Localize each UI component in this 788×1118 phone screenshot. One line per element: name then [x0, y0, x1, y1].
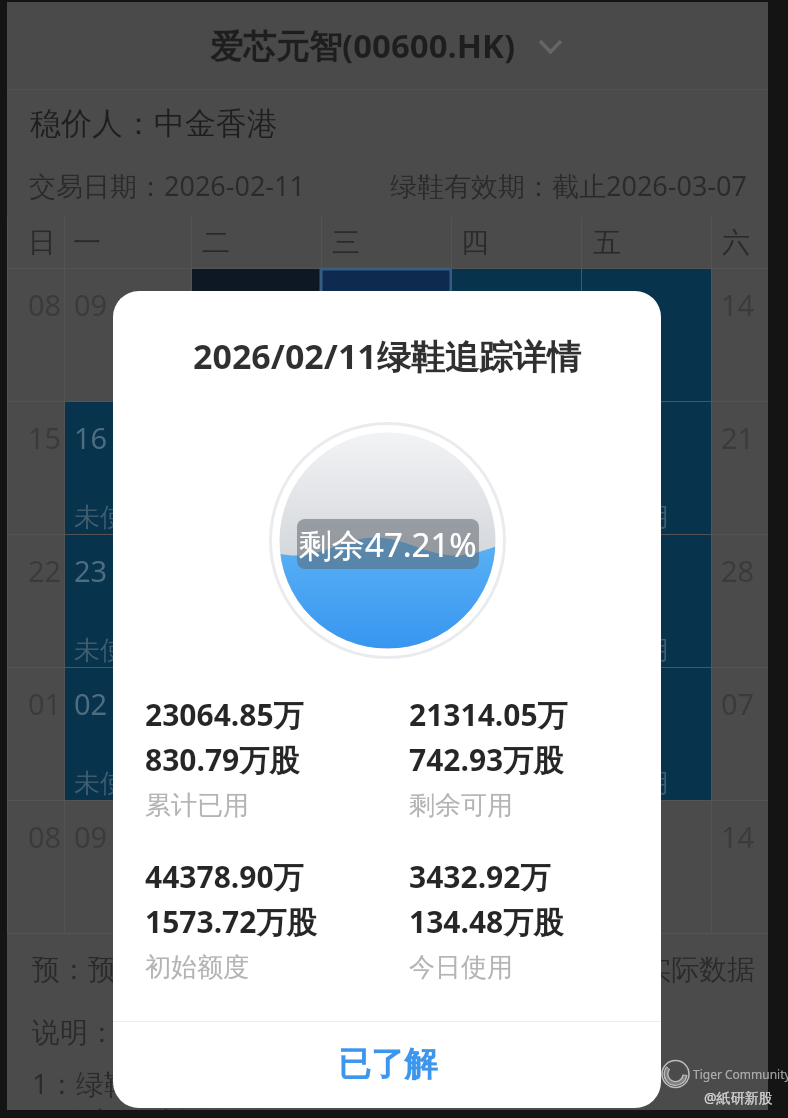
- staticText: 23: [74, 551, 108, 590]
- staticText: 1：绿鞋资金使用数据统计为每个交易日收盘最后: [32, 1064, 637, 1102]
- staticText: 说明：: [32, 1015, 116, 1050]
- staticText: 未使用: [74, 501, 152, 534]
- button[interactable]: 13: [581, 801, 711, 934]
- button[interactable]: 28: [711, 535, 768, 668]
- button[interactable]: 25: [321, 535, 451, 668]
- button[interactable]: 12: [451, 269, 581, 402]
- staticText: 未使用: [201, 501, 279, 534]
- staticText: 剩余可用: [409, 789, 513, 822]
- staticText: 02: [74, 684, 108, 723]
- staticText: 未使用: [591, 501, 669, 534]
- staticText: 五: [593, 225, 621, 260]
- staticText: 14: [721, 285, 755, 324]
- staticText: 22: [28, 551, 62, 590]
- staticText: 19: [461, 418, 495, 457]
- staticText: 六: [722, 225, 750, 260]
- button[interactable]: 27: [581, 535, 711, 668]
- button[interactable]: 26: [451, 535, 581, 668]
- staticText: 26: [461, 551, 495, 590]
- button[interactable]: 已了解: [113, 1022, 661, 1108]
- staticText: 134.48万股: [409, 901, 564, 942]
- staticText: 未使用: [591, 767, 669, 800]
- staticText: 交易日期：2026-02-11: [29, 167, 305, 204]
- staticText: 未使用: [201, 767, 279, 800]
- staticText: 实：实际数据: [587, 952, 755, 987]
- staticText: 13: [591, 285, 625, 324]
- button[interactable]: 23: [64, 535, 191, 668]
- button[interactable]: 10: [191, 801, 321, 934]
- button[interactable]: 09: [64, 801, 191, 934]
- staticText: 日: [28, 225, 56, 260]
- button[interactable]: 03: [191, 668, 321, 801]
- staticText: 剩余47.21%: [299, 522, 477, 567]
- button[interactable]: 08: [7, 801, 64, 934]
- button[interactable]: 05: [451, 668, 581, 801]
- staticText: 09: [74, 285, 108, 324]
- staticText: 05: [461, 684, 495, 723]
- staticText: 18: [331, 418, 365, 457]
- button[interactable]: 24: [191, 535, 321, 668]
- staticText: 累计已用: [145, 789, 249, 822]
- button[interactable]: 11: [321, 801, 451, 934]
- staticText: 未使用: [461, 501, 539, 534]
- staticText: 3432.92万: [409, 856, 551, 897]
- staticText: 三: [332, 225, 360, 260]
- staticText: 21314.05万: [409, 694, 568, 735]
- staticText: 23064.85万: [145, 694, 304, 735]
- staticText: 28: [721, 551, 755, 590]
- button[interactable]: 06: [581, 668, 711, 801]
- staticText: 07: [721, 684, 755, 723]
- staticText: 830.79万股: [145, 739, 300, 780]
- button[interactable]: 13: [581, 269, 711, 402]
- button[interactable]: 04: [321, 668, 451, 801]
- staticText: 未使用: [331, 501, 409, 534]
- button[interactable]: 10: [191, 269, 321, 402]
- staticText: 未使用: [461, 767, 539, 800]
- button[interactable]: 02: [64, 668, 191, 801]
- staticText: 1573.72万股: [145, 901, 317, 942]
- button[interactable]: 11: [321, 269, 451, 402]
- staticText: 14: [721, 817, 755, 856]
- staticText: 未使用: [74, 767, 152, 800]
- button[interactable]: 12: [451, 801, 581, 934]
- staticText: 12: [461, 285, 495, 324]
- button[interactable]: 20: [581, 402, 711, 535]
- staticText: 未使用: [74, 634, 152, 667]
- staticText: 08: [28, 817, 62, 856]
- button[interactable]: 19: [451, 402, 581, 535]
- staticText: Tiger Community: [693, 1066, 788, 1082]
- staticText: 四: [461, 225, 489, 260]
- button[interactable]: Switch stock: [535, 31, 565, 61]
- button[interactable]: 09: [64, 269, 191, 402]
- button[interactable]: 17: [191, 402, 321, 535]
- button[interactable]: 16: [64, 402, 191, 535]
- staticText: 09: [74, 817, 108, 856]
- staticText: 爱芯元智(00600.HK): [210, 23, 516, 68]
- staticText: 2026/02/11绿鞋追踪详情: [193, 333, 581, 379]
- staticText: @紙研新股: [704, 1088, 773, 1107]
- staticText: 一: [73, 225, 101, 260]
- button[interactable]: 08: [7, 269, 64, 402]
- button[interactable]: 18: [321, 402, 451, 535]
- staticText: 一个交易时段的数据: [32, 1105, 284, 1110]
- staticText: 15: [28, 418, 62, 457]
- staticText: 08: [28, 285, 62, 324]
- staticText: 初始额度: [145, 951, 249, 984]
